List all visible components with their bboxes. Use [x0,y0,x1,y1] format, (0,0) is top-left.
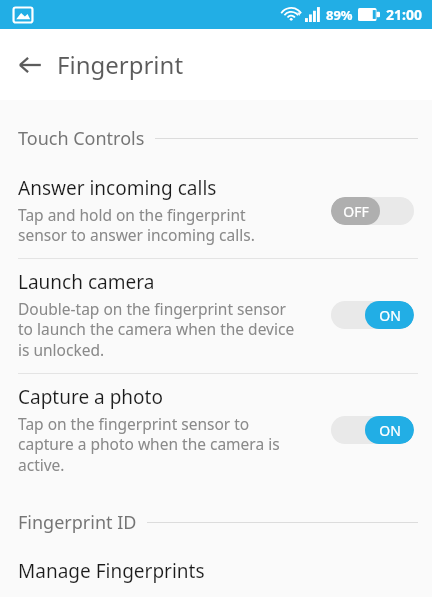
button[interactable]: Toggle off [331,197,414,225]
staticText: Tap on the fingerprint sensor to capture… [18,413,280,476]
button[interactable]: Answer incoming calls [0,165,432,258]
button[interactable]: Toggle on [331,301,414,329]
staticText: Double-tap on the fingerprint sensor to … [18,298,295,361]
button[interactable]: Launch camera [0,259,432,373]
staticText: Capture a photo [18,384,163,410]
staticText: ON [379,306,401,325]
staticText: Fingerprint [57,48,184,81]
staticText: ON [379,421,401,440]
staticText: 21:00 [386,5,422,24]
staticText: Fingerprint ID [18,510,137,535]
button[interactable]: Back [10,45,50,85]
staticText: Manage Fingerprints [18,558,205,584]
staticText: Launch camera [18,269,155,295]
button[interactable]: Manage Fingerprints [0,545,432,597]
button[interactable]: Toggle on [331,416,414,444]
staticText: OFF [343,202,369,221]
staticText: Tap and hold on the fingerprint sensor t… [18,204,255,246]
staticText: Touch Controls [18,126,145,151]
staticText: Answer incoming calls [18,175,217,201]
button[interactable]: Capture a photo [0,374,432,488]
staticText: 89% [326,6,353,24]
